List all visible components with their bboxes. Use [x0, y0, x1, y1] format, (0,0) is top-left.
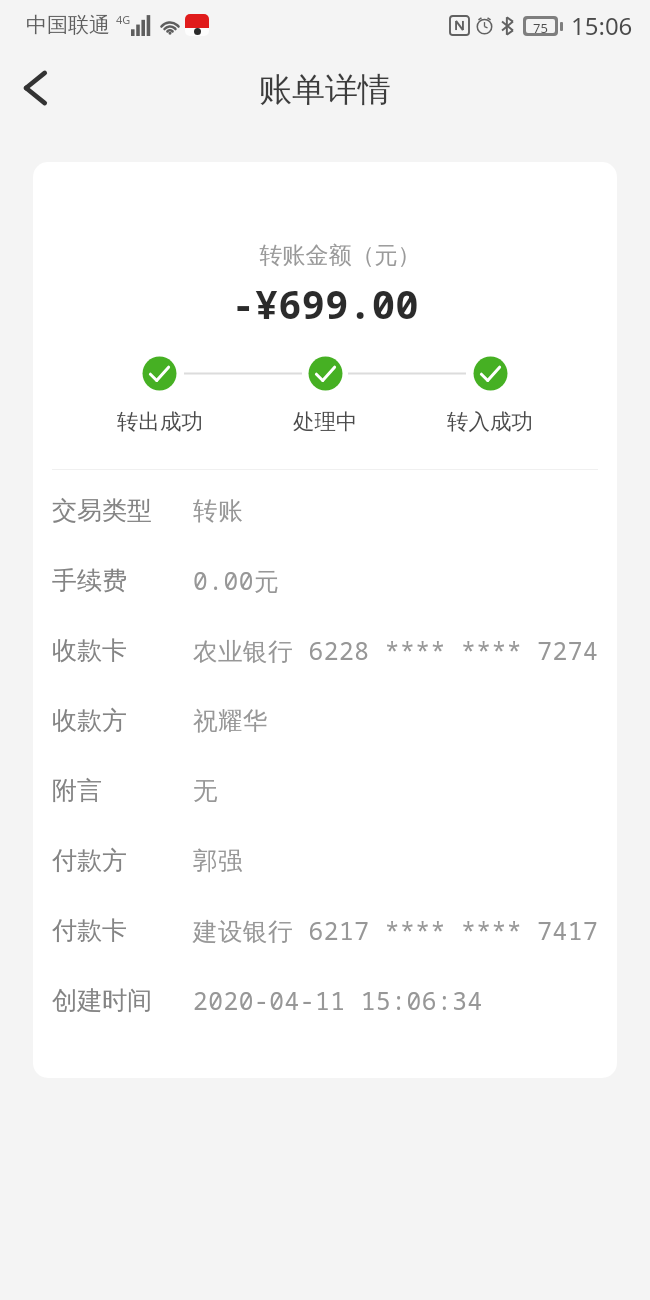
other: Completed — [142, 356, 177, 391]
staticText: 账单详情 — [259, 69, 391, 111]
staticText: 转入成功 — [447, 408, 533, 435]
button[interactable]: 付款卡 — [33, 895, 617, 965]
other: Completed — [308, 356, 343, 391]
other: App notification — [185, 14, 209, 36]
button[interactable]: 创建时间 — [33, 965, 617, 1035]
staticText: 无 — [193, 775, 219, 806]
button[interactable]: 收款卡 — [33, 615, 617, 685]
staticText: 2020-04-11 15:06:34 — [193, 984, 483, 1017]
staticText: 75 — [533, 19, 548, 33]
staticText: 收款卡 — [52, 635, 193, 666]
button[interactable]: 付款方 — [33, 825, 617, 895]
button[interactable]: 收款方 — [33, 685, 617, 755]
staticText: 建设银行 6217 **** **** 7417 — [193, 914, 599, 947]
button[interactable]: 交易类型 — [33, 475, 617, 545]
staticText: 创建时间 — [52, 985, 193, 1016]
staticText: -¥699.00 — [33, 277, 617, 330]
staticText: 转账 — [193, 495, 244, 526]
other: Mobile signal — [131, 15, 151, 36]
staticText: 付款方 — [52, 845, 193, 876]
staticText: 手续费 — [52, 565, 193, 596]
other: Completed — [473, 356, 508, 391]
button[interactable]: Back — [9, 58, 69, 118]
staticText: 附言 — [52, 775, 193, 806]
other: Battery 75 percent — [523, 16, 563, 36]
button[interactable]: 手续费 — [33, 545, 617, 615]
staticText: 付款卡 — [52, 915, 193, 946]
staticText: 农业银行 6228 **** **** 7274 — [193, 634, 599, 667]
button[interactable]: 附言 — [33, 755, 617, 825]
staticText: 4G — [116, 12, 131, 27]
staticText: 收款方 — [52, 705, 193, 736]
staticText: 中国联通 — [26, 12, 110, 38]
staticText: 15:06 — [571, 9, 633, 42]
other: Alarm set — [475, 16, 494, 35]
staticText: 0.00元 — [193, 564, 280, 597]
other: Wi-Fi — [159, 16, 181, 35]
other: Bluetooth — [501, 16, 514, 36]
staticText: 转出成功 — [117, 408, 203, 435]
other: NFC — [450, 16, 469, 35]
staticText: 郭强 — [193, 845, 244, 876]
staticText: 祝耀华 — [193, 705, 269, 736]
staticText: 交易类型 — [52, 495, 193, 526]
staticText: 转账金额（元） — [48, 241, 617, 270]
staticText: 处理中 — [293, 408, 358, 435]
